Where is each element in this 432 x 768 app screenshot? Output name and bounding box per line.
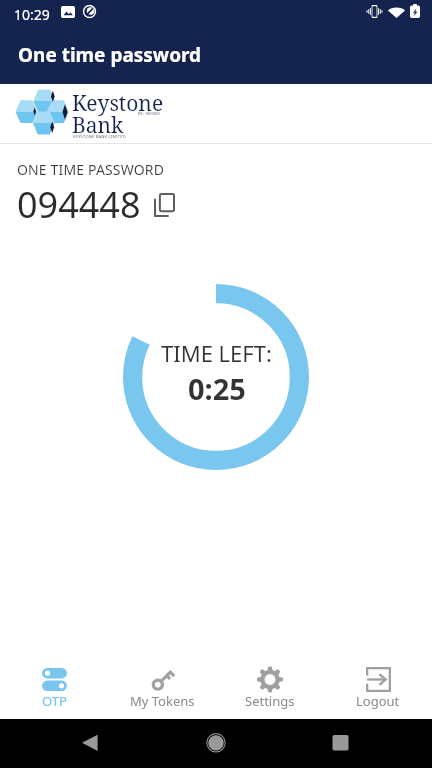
staticText: 10:29 <box>14 5 50 24</box>
staticText: 094448 <box>17 180 141 229</box>
button[interactable]: Logout <box>324 660 432 719</box>
staticText: 0:25 <box>188 369 246 408</box>
button[interactable]: Copy one time password <box>148 189 180 221</box>
button[interactable]: Settings <box>216 660 324 719</box>
staticText: One time password <box>18 42 202 68</box>
staticText: Keystone <box>72 89 164 118</box>
staticText: Settings <box>245 692 295 710</box>
staticText: Logout <box>356 692 400 710</box>
staticText: RC: 969000 <box>138 111 160 117</box>
staticText: OTP <box>42 692 67 710</box>
staticText: ONE TIME PASSWORD <box>17 160 165 179</box>
staticText: Bank <box>72 111 124 140</box>
button[interactable]: My Tokens <box>108 660 216 719</box>
staticText: My Tokens <box>130 692 195 710</box>
button[interactable]: OTP <box>0 660 108 719</box>
staticText: TIME LEFT: <box>161 338 272 368</box>
staticText: KEYSTONE BANK LIMITED <box>73 134 126 139</box>
